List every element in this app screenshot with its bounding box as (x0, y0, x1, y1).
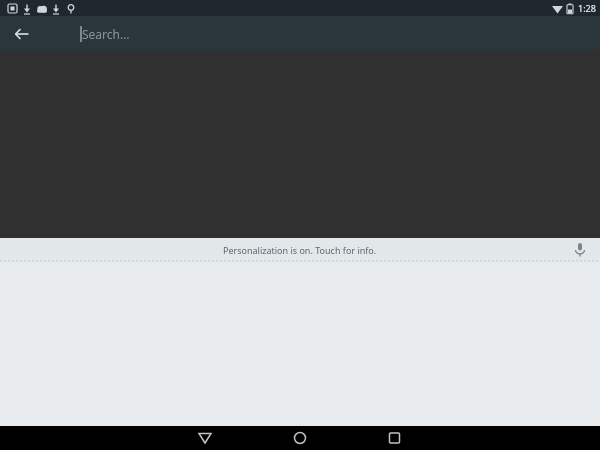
button[interactable]: Personalization is on. Touch for info. (0, 238, 600, 262)
button[interactable]: Home (288, 426, 312, 450)
staticText: Personalization is on. Touch for info. (223, 244, 377, 256)
button[interactable]: Back (193, 426, 600, 450)
staticText: Search… (82, 26, 130, 42)
button[interactable]: Back (6, 18, 38, 50)
button[interactable]: Voice input (570, 240, 590, 260)
staticText: 1:28 (578, 2, 596, 14)
button[interactable]: Recent apps (383, 426, 407, 450)
